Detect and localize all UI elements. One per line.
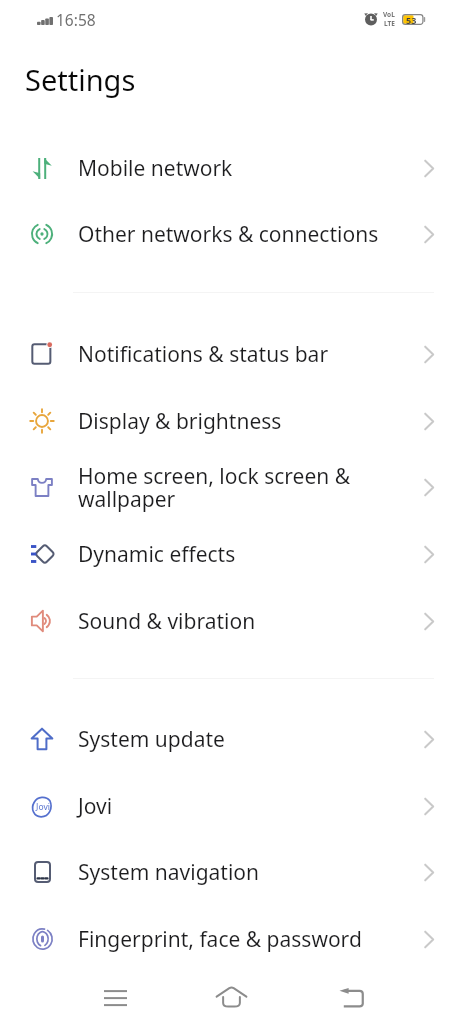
- staticText: Dynamic effects: [78, 540, 395, 569]
- staticText: System update: [78, 725, 395, 754]
- staticText: Home screen, lock screen & wallpaper: [78, 462, 395, 513]
- button[interactable]: Mobile network: [0, 135, 461, 201]
- button[interactable]: System update: [0, 706, 461, 772]
- button[interactable]: System navigation: [0, 839, 461, 905]
- button[interactable]: Sound & vibration: [0, 588, 461, 654]
- staticText: Other networks & connections: [78, 220, 395, 249]
- staticText: Jovi: [78, 792, 395, 821]
- staticText: Settings: [25, 60, 136, 99]
- button[interactable]: Display & brightness: [0, 388, 461, 454]
- staticText: 16:58: [56, 9, 96, 30]
- staticText: Notifications & status bar: [78, 340, 395, 369]
- button[interactable]: Notifications & status bar: [0, 321, 461, 387]
- staticText: System navigation: [78, 858, 395, 887]
- button[interactable]: Recent apps: [83, 978, 147, 1018]
- staticText: VoL: [383, 10, 395, 19]
- staticText: LTE: [384, 19, 395, 28]
- staticText: Fingerprint, face & password: [78, 925, 395, 954]
- button[interactable]: Home: [199, 977, 263, 1017]
- staticText: Mobile network: [78, 154, 395, 183]
- button[interactable]: Jovi: [0, 773, 461, 839]
- button[interactable]: Dynamic effects: [0, 521, 461, 587]
- button[interactable]: Other networks & connections: [0, 201, 461, 267]
- staticText: 53: [406, 14, 417, 25]
- staticText: Jovi: [36, 801, 50, 813]
- button[interactable]: Home screen, lock screen & wallpaper: [0, 454, 461, 520]
- staticText: Display & brightness: [78, 407, 395, 436]
- button[interactable]: Fingerprint, face & password: [0, 906, 461, 972]
- button[interactable]: Back: [319, 978, 383, 1018]
- staticText: Sound & vibration: [78, 607, 395, 636]
